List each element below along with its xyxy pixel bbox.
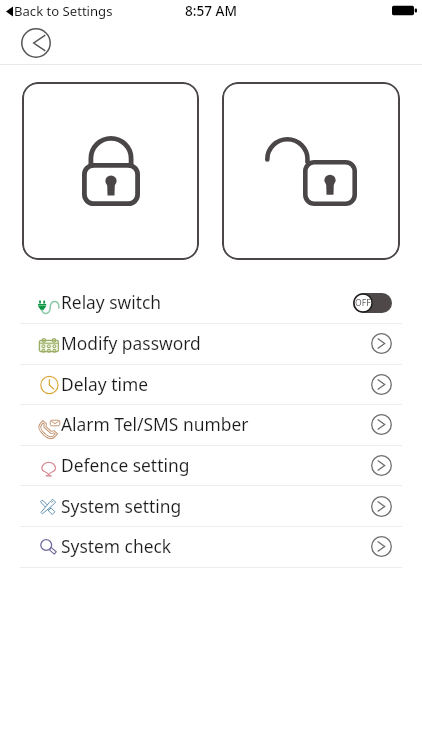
button[interactable]: Back to Settings: [6, 2, 113, 20]
button[interactable]: Open: [371, 536, 392, 557]
button[interactable]: Open: [371, 333, 392, 354]
button[interactable]: System setting: [0, 486, 422, 527]
button[interactable]: Delay time: [0, 364, 422, 405]
staticText: OFF: [355, 297, 371, 309]
button[interactable]: Open: [371, 496, 392, 517]
button[interactable]: Unlock: [222, 82, 400, 260]
staticText: System setting: [61, 494, 182, 518]
button[interactable]: Relay switch: [0, 282, 422, 323]
staticText: 8:57 AM: [185, 1, 237, 20]
button[interactable]: System check: [0, 526, 422, 567]
staticText: Modify password: [61, 331, 201, 355]
staticText: Defence setting: [61, 453, 190, 477]
button[interactable]: Relay switch off: [353, 293, 392, 313]
button[interactable]: Defence setting: [0, 445, 422, 486]
button[interactable]: Back: [21, 28, 51, 58]
staticText: Back to Settings: [14, 2, 113, 20]
button[interactable]: Modify password: [0, 323, 422, 364]
staticText: Delay time: [61, 372, 148, 396]
button[interactable]: Open: [371, 414, 392, 435]
button[interactable]: Open: [371, 374, 392, 395]
button[interactable]: Alarm Tel/SMS number: [0, 404, 422, 445]
staticText: Relay switch: [61, 290, 162, 314]
staticText: System check: [61, 534, 172, 558]
button[interactable]: Open: [371, 455, 392, 476]
button[interactable]: Lock: [22, 82, 199, 260]
staticText: Alarm Tel/SMS number: [61, 412, 249, 436]
